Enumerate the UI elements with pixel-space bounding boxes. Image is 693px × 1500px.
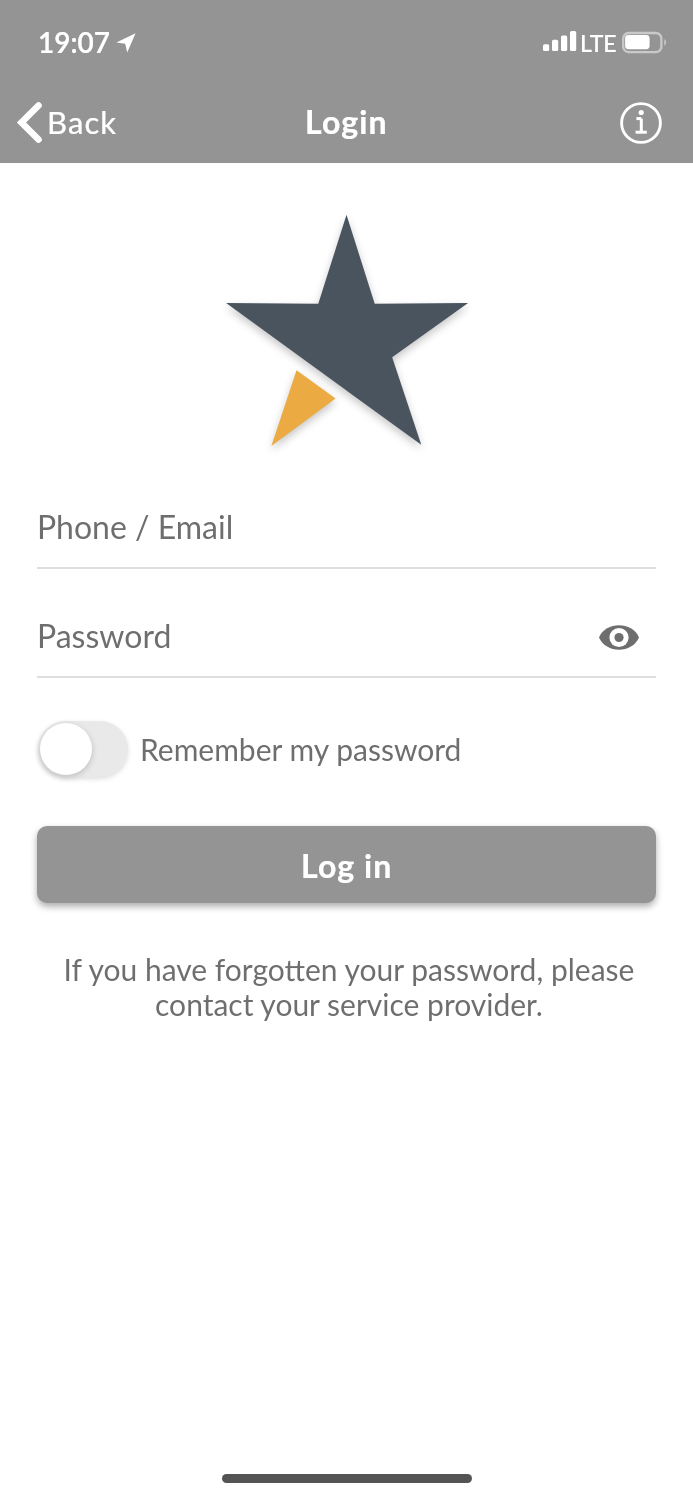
staticText: Login	[305, 102, 388, 140]
staticText: Log in	[301, 846, 393, 884]
staticText: Back	[47, 103, 118, 140]
staticText: Password	[37, 616, 172, 654]
staticText: Remember my password	[140, 731, 462, 767]
button[interactable]: Log in	[37, 826, 656, 903]
button[interactable]: Remember my password	[38, 717, 462, 781]
other: App logo	[208, 204, 485, 481]
staticText: LTE	[580, 29, 617, 57]
button[interactable]: Information	[611, 93, 671, 153]
staticText: If you have forgotten your password, ple…	[60, 951, 638, 1022]
staticText: 19:07	[38, 25, 111, 59]
button[interactable]: Show password	[593, 611, 645, 663]
staticText: Phone / Email	[37, 507, 234, 545]
button[interactable]: Back	[6, 86, 134, 158]
